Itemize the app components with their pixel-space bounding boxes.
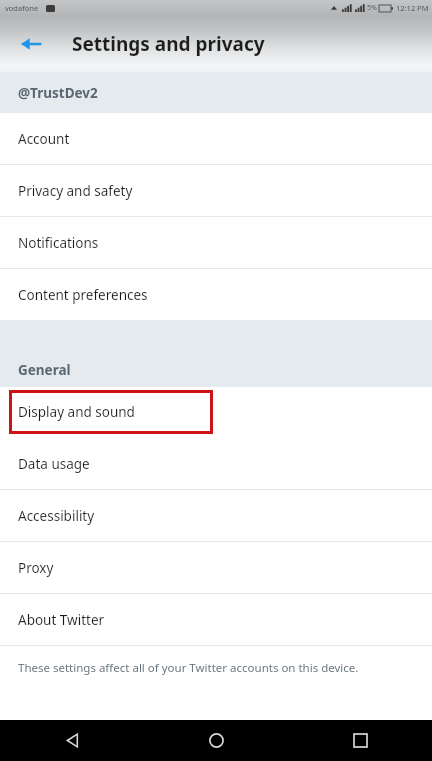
button[interactable]: Data usage bbox=[0, 438, 432, 489]
button[interactable]: Accessibility bbox=[0, 490, 432, 541]
button[interactable]: Notifications bbox=[0, 217, 432, 268]
button[interactable]: Content preferences bbox=[0, 269, 432, 320]
button[interactable]: Back bbox=[0, 720, 144, 761]
staticText: @TrustDev2 bbox=[18, 84, 98, 102]
staticText: Data usage bbox=[18, 455, 90, 473]
staticText: These settings affect all of your Twitte… bbox=[18, 660, 359, 676]
staticText: Display and sound bbox=[18, 403, 135, 421]
staticText: 5% bbox=[367, 3, 377, 13]
button[interactable]: Recent apps bbox=[288, 720, 432, 761]
staticText: General bbox=[18, 361, 71, 379]
staticText: Privacy and safety bbox=[18, 182, 133, 200]
staticText: Notifications bbox=[18, 234, 99, 252]
staticText: Content preferences bbox=[18, 286, 148, 304]
button[interactable]: Account bbox=[0, 113, 432, 164]
button[interactable]: About Twitter bbox=[0, 594, 432, 645]
button[interactable]: Privacy and safety bbox=[0, 165, 432, 216]
staticText: Proxy bbox=[18, 559, 54, 577]
button[interactable]: Proxy bbox=[0, 542, 432, 593]
button[interactable]: Back bbox=[10, 23, 52, 65]
staticText: 12:12 PM bbox=[396, 3, 429, 13]
staticText: Settings and privacy bbox=[72, 31, 265, 57]
staticText: vodafone bbox=[5, 3, 39, 13]
button[interactable]: Home bbox=[144, 720, 288, 761]
staticText: Accessibility bbox=[18, 507, 95, 525]
staticText: About Twitter bbox=[18, 611, 105, 629]
button[interactable]: Display and sound bbox=[9, 390, 213, 434]
staticText: Account bbox=[18, 130, 70, 148]
